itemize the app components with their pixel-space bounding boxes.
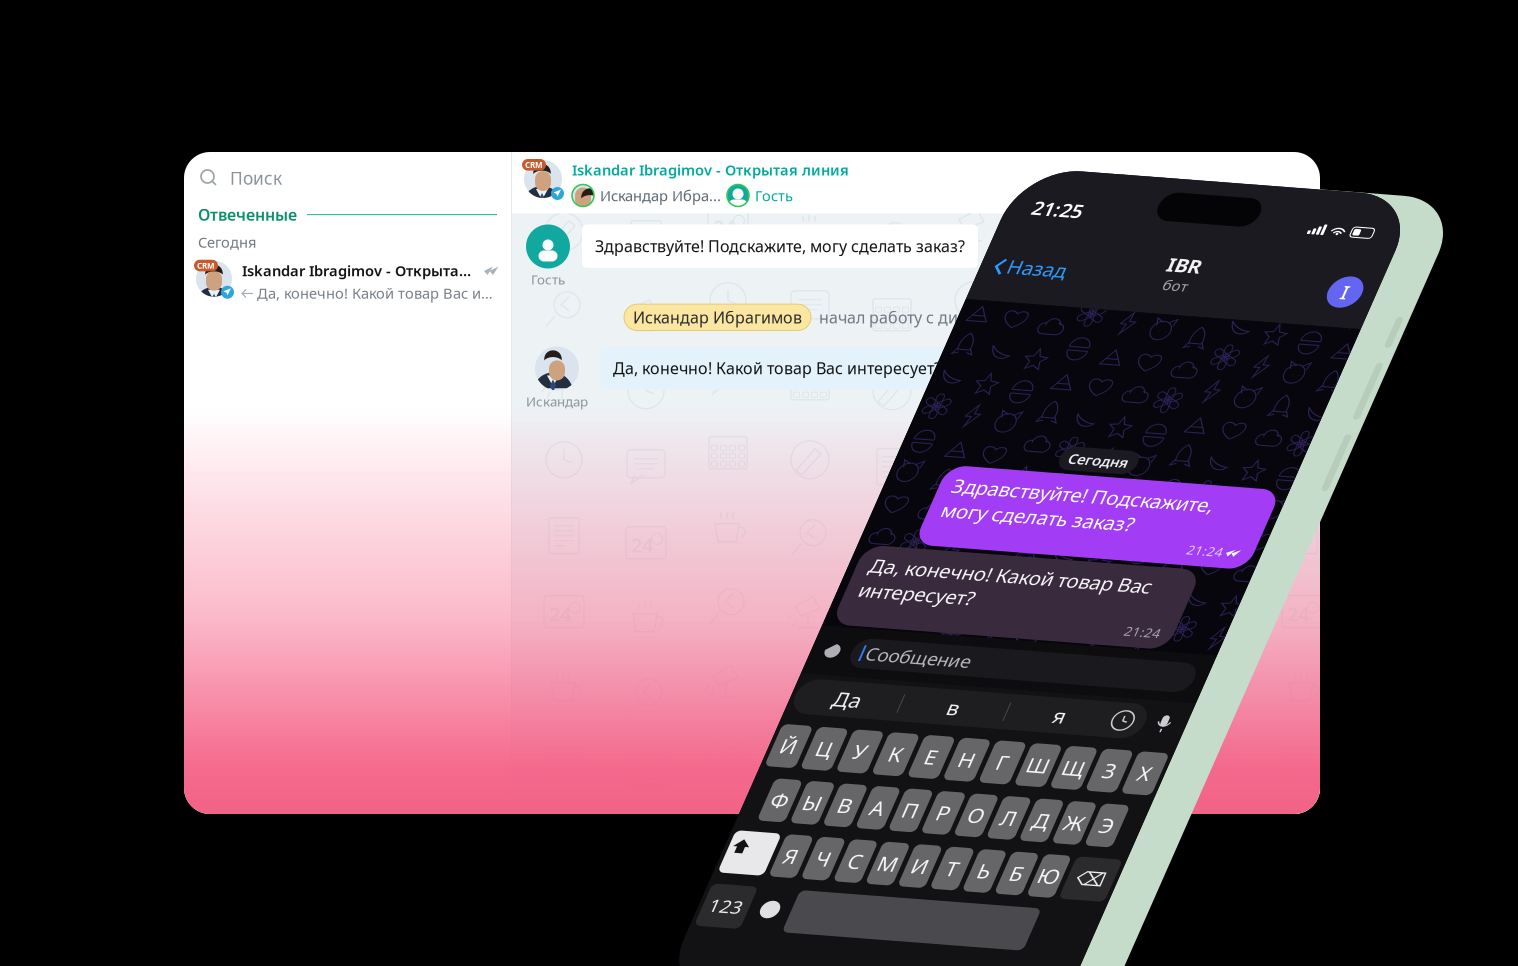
button[interactable]: Ч <box>1111 890 1139 936</box>
button[interactable]: Щ <box>1314 774 1344 820</box>
button[interactable]: П <box>1175 832 1203 878</box>
button[interactable]: У <box>1099 774 1130 820</box>
button[interactable]: Ц <box>1064 774 1094 820</box>
staticText: 24 <box>795 144 817 171</box>
staticText: Искандар <box>526 392 588 410</box>
button[interactable]: Г <box>1242 774 1273 820</box>
button[interactable]: Ы <box>1077 832 1105 878</box>
staticText: Сегодня <box>1192 461 1252 480</box>
staticText: 24 <box>713 213 735 240</box>
staticText: Искандар Ибрагимов <box>633 307 802 328</box>
button[interactable]: CRM <box>512 152 1320 213</box>
button[interactable]: CRM <box>184 252 511 303</box>
staticText: Ц <box>1071 783 1087 811</box>
button[interactable]: Ш <box>1278 774 1309 820</box>
button[interactable]: Эмодзи <box>1080 948 1110 966</box>
button[interactable]: Я <box>1079 890 1106 936</box>
staticText: Ф <box>1049 841 1066 869</box>
staticText: CRM <box>525 159 543 170</box>
staticText: 24 <box>1041 372 1063 399</box>
staticText: Й <box>1035 783 1051 811</box>
staticText: Поиск <box>230 166 282 189</box>
staticText: CRM <box>197 260 215 271</box>
button[interactable] <box>1116 948 1358 966</box>
button[interactable]: Е <box>1171 774 1202 820</box>
button[interactable]: Shift <box>1028 890 1074 936</box>
staticText: Да, конечно! Какой товар Вас интересует? <box>1045 586 1328 639</box>
staticText: Здравствуйте! Подскажите, могу сделать з… <box>595 235 965 257</box>
staticText: У <box>1108 783 1121 811</box>
button[interactable]: Назад <box>1038 260 1110 286</box>
staticText: 24 <box>795 828 817 855</box>
staticText: я <box>1287 729 1299 757</box>
button[interactable]: Н <box>1207 774 1237 820</box>
button[interactable]: Поиск <box>184 152 511 204</box>
button[interactable]: Прикрепить файл <box>1036 682 1054 704</box>
staticText: Гость <box>531 270 565 288</box>
staticText: Отвеченные <box>198 204 297 225</box>
staticText: 24 <box>467 669 489 696</box>
staticText: Да <box>1067 729 1095 757</box>
staticText: в <box>1181 729 1193 757</box>
staticText: С <box>1150 899 1164 927</box>
staticText: Гость <box>755 186 793 205</box>
button[interactable]: К <box>1135 774 1166 820</box>
staticText: В <box>1116 841 1130 869</box>
button[interactable]: Й <box>1028 774 1059 820</box>
button[interactable]: Профиль бота <box>1372 256 1406 290</box>
staticText: Iskandar Ibragimov - Открытая линия <box>572 160 849 179</box>
staticText: Я <box>1086 899 1100 927</box>
staticText: 24 <box>1287 600 1309 627</box>
staticText: Да, конечно! Какой товар Вас интересу... <box>257 283 499 303</box>
staticText: I <box>1385 260 1392 286</box>
staticText: Iskandar Ibragimov - Открытая ли... <box>242 261 472 280</box>
button[interactable]: Ф <box>1044 832 1072 878</box>
staticText: 24 <box>1123 303 1145 330</box>
button[interactable]: А <box>1142 832 1170 878</box>
staticText: 24 <box>631 531 653 558</box>
staticText: Искандар Ибра... <box>600 186 721 205</box>
staticText: начал работу с диалогом <box>819 307 1015 328</box>
staticText: 24 <box>549 600 571 627</box>
button[interactable]: В <box>1110 832 1137 878</box>
button[interactable]: С <box>1144 890 1171 936</box>
staticText: 24 <box>877 759 899 786</box>
button[interactable]: Сообщение <box>1064 677 1408 709</box>
staticText: Ы <box>1082 841 1100 869</box>
staticText: К <box>1144 783 1157 811</box>
